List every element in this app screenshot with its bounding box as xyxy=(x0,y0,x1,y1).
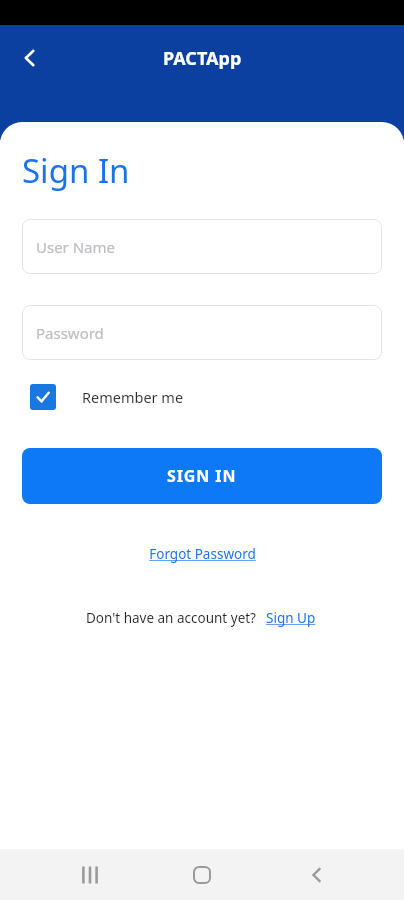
staticText: User Name xyxy=(36,237,116,257)
staticText: Sign In xyxy=(22,148,130,193)
button[interactable]: Sign Up xyxy=(264,606,318,630)
button[interactable]: Back xyxy=(8,36,52,80)
button[interactable]: Home xyxy=(174,849,230,900)
staticText: Remember me xyxy=(82,387,184,407)
staticText: Forgot Password xyxy=(149,545,256,563)
staticText: Don't have an account yet? xyxy=(86,609,256,627)
staticText: PACTApp xyxy=(163,46,242,71)
button[interactable]: Back xyxy=(289,849,345,900)
button[interactable]: Recent apps xyxy=(62,849,118,900)
button[interactable]: Remember me xyxy=(30,384,184,410)
button[interactable]: User Name xyxy=(22,219,382,274)
staticText: Sign Up xyxy=(266,609,316,627)
button[interactable]: SIGN IN xyxy=(22,448,382,504)
staticText: SIGN IN xyxy=(167,465,237,487)
button[interactable]: Password xyxy=(22,305,382,360)
staticText: Password xyxy=(36,323,104,343)
button[interactable]: Forgot Password xyxy=(143,542,262,566)
